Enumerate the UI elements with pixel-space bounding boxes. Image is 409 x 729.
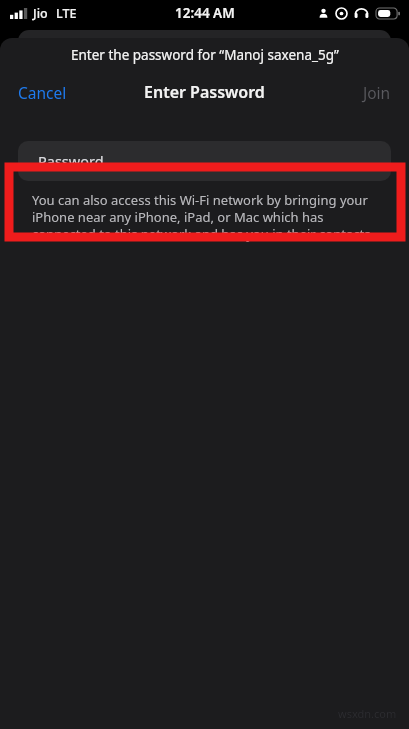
staticText: You can also access this Wi-Fi network b… bbox=[32, 191, 379, 243]
other: Account bbox=[318, 8, 329, 19]
button[interactable]: Password bbox=[18, 141, 391, 181]
button[interactable]: Join bbox=[351, 76, 403, 109]
staticText: wsxdn.com bbox=[338, 706, 397, 721]
button[interactable]: Cancel bbox=[6, 76, 79, 109]
staticText: LTE bbox=[56, 5, 77, 22]
staticText: Password bbox=[38, 151, 104, 171]
other: Location bbox=[336, 8, 347, 19]
staticText: Jio bbox=[33, 5, 48, 22]
staticText: Enter the password for “Manoj saxena_5g” bbox=[71, 46, 339, 64]
staticText: Join bbox=[363, 82, 391, 103]
staticText: Cancel bbox=[18, 82, 67, 103]
staticText: Enter Password bbox=[144, 81, 265, 103]
other: Headphones bbox=[354, 8, 369, 19]
other: Battery bbox=[376, 8, 400, 19]
staticText: 12:44 AM bbox=[175, 4, 235, 22]
